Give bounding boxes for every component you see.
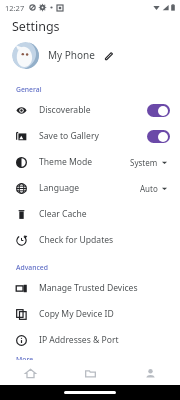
- button[interactable]: My Phone: [0, 37, 180, 73]
- staticText: Settings: [12, 18, 60, 35]
- button[interactable]: IP Addresses & Port: [0, 327, 180, 353]
- staticText: Copy My Device ID: [39, 308, 114, 320]
- button[interactable]: Files: [60, 361, 120, 385]
- staticText: 12:27: [5, 3, 25, 13]
- button[interactable]: Language: [0, 175, 180, 201]
- button[interactable]: Copy My Device ID: [0, 301, 180, 327]
- staticText: My Phone: [48, 48, 95, 62]
- staticText: Check for Updates: [39, 234, 114, 246]
- button[interactable]: Check for Updates: [0, 227, 180, 253]
- staticText: Theme Mode: [39, 156, 93, 168]
- staticText: Save to Gallery: [39, 130, 99, 142]
- button[interactable]: Home: [0, 361, 60, 385]
- staticText: System: [130, 157, 158, 168]
- button[interactable]: Profile: [120, 361, 180, 385]
- staticText: More: [16, 355, 34, 360]
- button[interactable]: Toggle on: [147, 104, 170, 117]
- button[interactable]: Save to Gallery: [0, 123, 180, 149]
- staticText: IP Addresses & Port: [39, 334, 119, 346]
- staticText: Advanced: [16, 263, 48, 272]
- staticText: Manage Trusted Devices: [39, 282, 138, 294]
- button[interactable]: Edit name: [102, 49, 115, 62]
- button[interactable]: Manage Trusted Devices: [0, 275, 180, 301]
- staticText: Discoverable: [39, 104, 91, 116]
- button[interactable]: System: [127, 155, 170, 170]
- staticText: Auto: [140, 183, 158, 194]
- staticText: Language: [39, 182, 80, 194]
- button[interactable]: Theme Mode: [0, 149, 180, 175]
- button[interactable]: Auto: [137, 181, 170, 196]
- button[interactable]: Discoverable: [0, 97, 180, 123]
- button[interactable]: Clear Cache: [0, 201, 180, 227]
- staticText: General: [16, 85, 42, 94]
- staticText: Clear Cache: [39, 208, 87, 220]
- button[interactable]: Toggle on: [147, 130, 170, 143]
